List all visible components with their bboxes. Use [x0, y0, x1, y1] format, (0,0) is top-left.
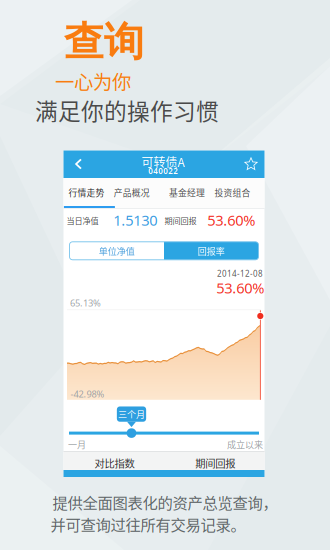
- button[interactable]: 产品概况: [109, 178, 154, 207]
- staticText: 53.60%: [207, 210, 255, 230]
- staticText: 040022: [148, 165, 178, 176]
- staticText: 并可查询过往所有交易记录。: [50, 513, 245, 535]
- staticText: 基金经理: [169, 186, 205, 199]
- staticText: 成立以来: [227, 438, 263, 451]
- button[interactable]: 对比指数: [64, 454, 165, 472]
- button[interactable]: 基金经理: [164, 178, 209, 207]
- button[interactable]: 单位净值: [69, 242, 164, 260]
- button[interactable]: 行情走势: [64, 178, 109, 207]
- staticText: 期间回报: [195, 455, 235, 470]
- staticText: 满足你的操作习惯: [35, 94, 219, 126]
- staticText: 单位净值: [99, 244, 135, 257]
- button[interactable]: Add to favourites: [238, 151, 264, 178]
- staticText: 投资组合: [214, 186, 250, 199]
- staticText: 65.13%: [70, 297, 101, 309]
- staticText: -42.98%: [70, 388, 104, 400]
- button[interactable]: 回报率: [164, 242, 258, 260]
- staticText: 一心为你: [55, 67, 131, 95]
- button[interactable]: 投资组合: [210, 178, 255, 207]
- staticText: 查询: [64, 17, 144, 67]
- button[interactable]: 期间回报: [165, 454, 265, 472]
- staticText: 对比指数: [94, 455, 134, 470]
- staticText: 回报率: [198, 244, 225, 257]
- staticText: 一月: [68, 438, 86, 451]
- staticText: 2014-12-08: [217, 268, 263, 279]
- staticText: 三个月: [118, 407, 145, 421]
- staticText: 1.5130: [113, 210, 157, 230]
- staticText: 53.60%: [216, 278, 264, 298]
- button[interactable]: Back: [65, 151, 91, 178]
- staticText: 可转债A: [141, 153, 184, 170]
- staticText: 当日净值: [66, 215, 98, 226]
- staticText: 提供全面图表化的资产总览查询，: [52, 491, 277, 513]
- staticText: 期间回报: [165, 215, 197, 226]
- staticText: 行情走势: [68, 186, 104, 199]
- staticText: 产品概况: [114, 186, 150, 199]
